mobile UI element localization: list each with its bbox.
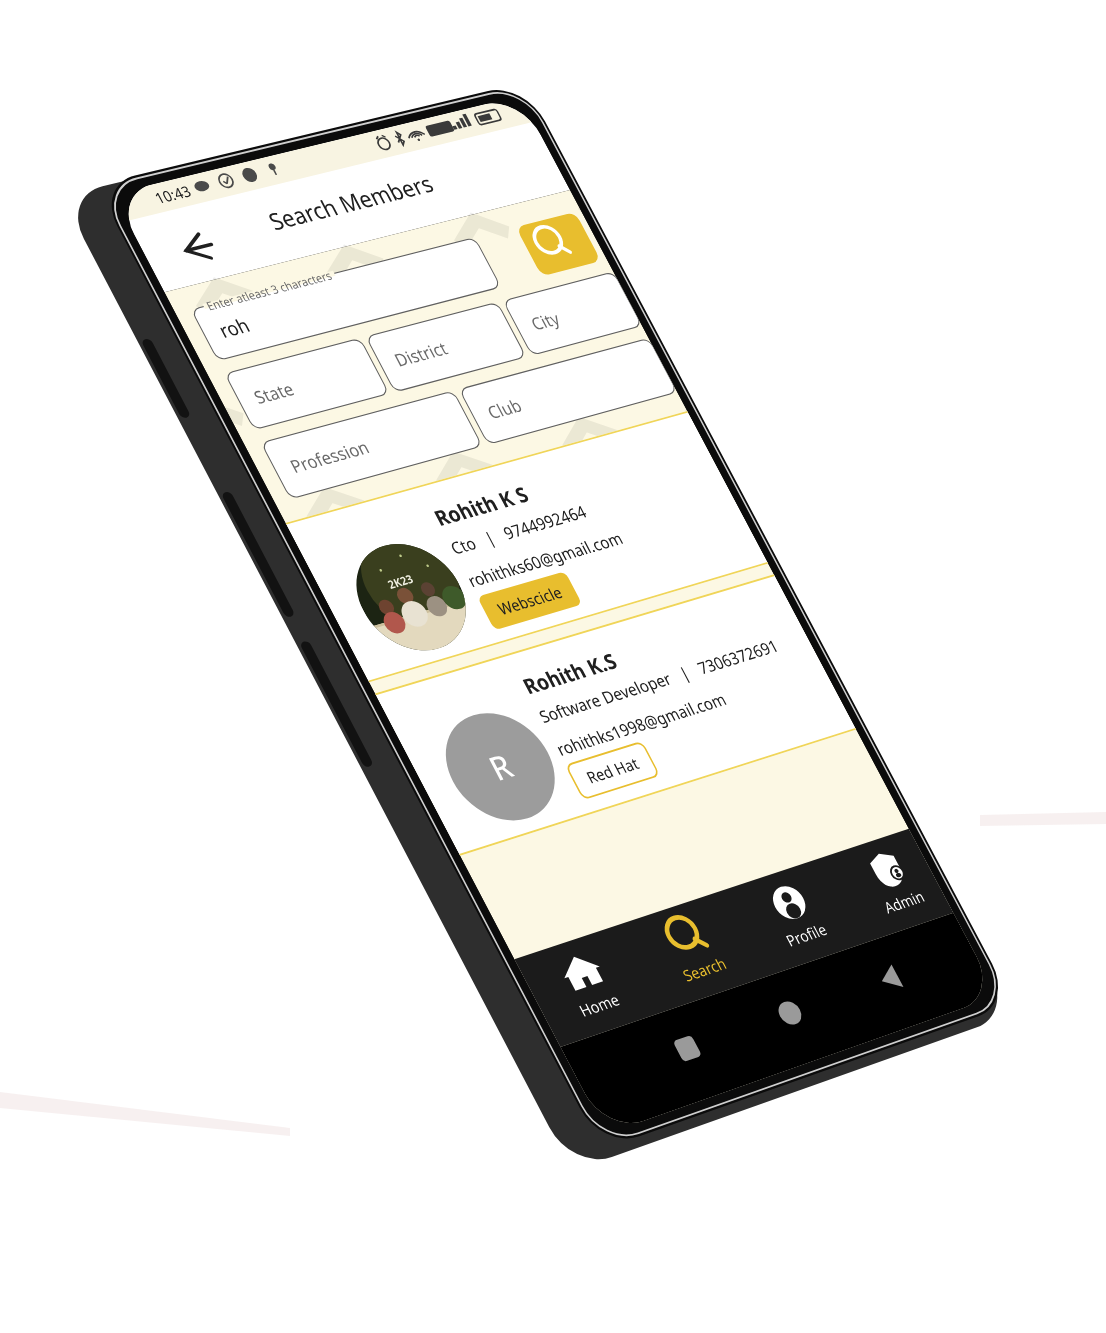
button[interactable] — [459, 338, 677, 444]
button[interactable]: Back — [158, 216, 240, 283]
button[interactable] — [514, 926, 662, 1048]
button[interactable] — [191, 238, 501, 361]
button[interactable] — [716, 860, 858, 978]
button[interactable] — [225, 338, 389, 429]
button[interactable] — [813, 829, 953, 946]
button[interactable] — [366, 302, 526, 392]
button[interactable] — [375, 574, 856, 855]
button[interactable] — [616, 892, 761, 1012]
button[interactable]: Search — [516, 212, 601, 276]
button[interactable] — [503, 272, 642, 355]
button[interactable] — [285, 411, 768, 682]
button[interactable] — [261, 391, 482, 499]
